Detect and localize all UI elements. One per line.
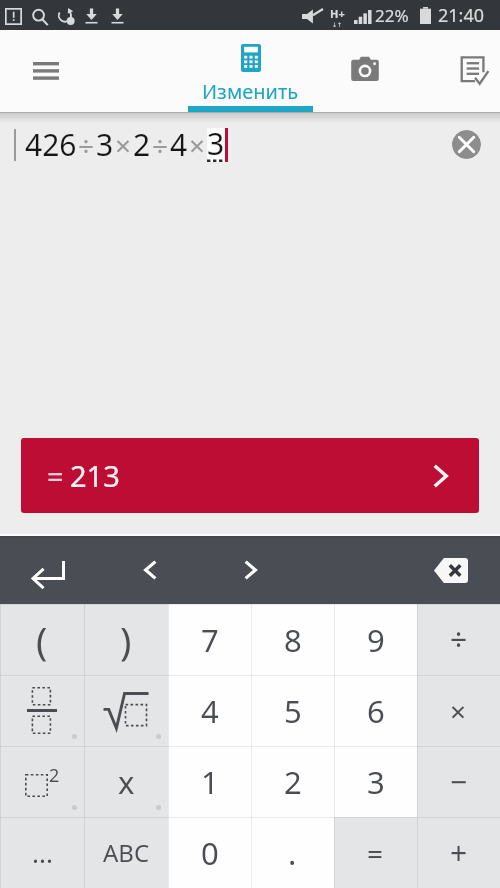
staticText: ÷	[450, 619, 468, 660]
button[interactable]: 0	[168, 817, 251, 888]
button[interactable]: .	[251, 817, 334, 888]
staticText: 7	[201, 619, 219, 661]
button[interactable]: =	[21, 438, 479, 513]
staticText: =	[367, 834, 384, 872]
staticText: 5	[284, 690, 302, 732]
button[interactable]: History	[436, 30, 500, 112]
staticText: H+	[330, 6, 345, 21]
button[interactable]: 2	[251, 746, 334, 817]
button[interactable]: 6	[334, 675, 417, 746]
staticText: 4	[170, 124, 188, 165]
staticText: =	[47, 456, 64, 495]
button[interactable]: ×	[417, 675, 500, 746]
button[interactable]: ABC	[84, 817, 168, 888]
staticText: −	[450, 761, 468, 802]
button[interactable]: 8	[251, 604, 334, 675]
button[interactable]	[0, 675, 84, 746]
button[interactable]: 1	[168, 746, 251, 817]
button[interactable]: −	[417, 746, 500, 817]
button[interactable]: ÷	[417, 604, 500, 675]
staticText: ÷	[152, 126, 169, 164]
staticText: 3	[367, 761, 385, 803]
staticText: 4	[201, 690, 219, 732]
staticText: .	[288, 832, 297, 874]
staticText: ×	[450, 692, 467, 730]
button[interactable]: Enter	[23, 536, 75, 604]
button[interactable]: )	[84, 604, 168, 675]
button[interactable]: Move left	[124, 536, 176, 604]
button[interactable]: Изменить	[188, 30, 313, 112]
button[interactable]: Backspace	[425, 536, 477, 604]
staticText: 1	[201, 761, 219, 803]
button[interactable]: 7	[168, 604, 251, 675]
staticText: 0	[201, 832, 219, 874]
staticText: ÷	[78, 126, 95, 164]
button[interactable]: x	[84, 746, 168, 817]
button[interactable]: ...	[0, 817, 84, 888]
button[interactable]: 2	[0, 746, 84, 817]
staticText: 9	[367, 619, 385, 661]
staticText: 21:40	[438, 3, 485, 28]
button[interactable]: Menu	[8, 30, 83, 112]
button[interactable]: =	[334, 817, 417, 888]
staticText: 3	[207, 123, 225, 157]
button[interactable]	[84, 675, 168, 746]
staticText: x	[118, 761, 135, 803]
staticText: 426	[25, 124, 77, 165]
staticText: 2	[133, 124, 151, 165]
staticText: ↓↑	[332, 21, 343, 28]
button[interactable]: Camera	[327, 30, 402, 112]
staticText: ABC	[103, 836, 150, 869]
staticText: 8	[284, 619, 302, 661]
button[interactable]: 9	[334, 604, 417, 675]
staticText: ×	[189, 126, 206, 164]
staticText: Изменить	[202, 78, 299, 105]
button[interactable]: 5	[251, 675, 334, 746]
button[interactable]: 3	[334, 746, 417, 817]
button[interactable]: (	[0, 604, 84, 675]
button[interactable]: 4	[168, 675, 251, 746]
button[interactable]: Move right	[224, 536, 276, 604]
button[interactable]: +	[417, 817, 500, 888]
staticText: 213	[70, 456, 120, 495]
staticText: ...	[32, 835, 53, 870]
staticText: (	[36, 614, 48, 666]
staticText: 22%	[375, 4, 409, 27]
staticText: +	[450, 832, 468, 873]
button[interactable]: Clear	[452, 130, 481, 159]
staticText: 2	[284, 761, 302, 803]
staticText: 2	[49, 763, 60, 788]
staticText: )	[120, 614, 132, 666]
staticText: 3	[96, 124, 114, 165]
staticText: 6	[367, 690, 385, 732]
staticText: ×	[115, 126, 132, 164]
